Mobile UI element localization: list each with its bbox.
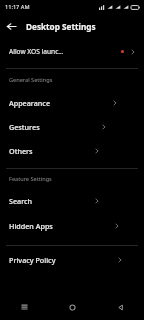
staticText: General Settings (9, 76, 53, 84)
staticText: Feature Settings (9, 175, 52, 183)
staticText: Gestures (9, 122, 40, 132)
button[interactable]: Others (0, 139, 144, 163)
staticText: Privacy Policy (9, 255, 56, 265)
button[interactable]: Privacy Policy (0, 246, 144, 274)
button[interactable]: Gestures (0, 115, 144, 139)
staticText: Others (9, 146, 33, 156)
button[interactable]: Hidden Apps (0, 213, 144, 239)
staticText: Hidden Apps (9, 221, 53, 231)
button[interactable]: Search (0, 189, 144, 213)
button[interactable]: Allow XOS launcher to get system n.. (0, 38, 144, 65)
button[interactable]: Home (48, 295, 96, 320)
staticText: Appearance (9, 98, 51, 108)
button[interactable]: Back (96, 295, 144, 320)
button[interactable]: Appearance (0, 91, 144, 115)
staticText: Desktop Settings (26, 21, 96, 32)
staticText: 11:17 AM (5, 3, 30, 11)
staticText: Allow XOS launcher to get system n.. (9, 47, 65, 56)
staticText: Search (9, 196, 33, 206)
button[interactable]: Recents (0, 295, 48, 320)
button[interactable]: Back (0, 15, 22, 37)
